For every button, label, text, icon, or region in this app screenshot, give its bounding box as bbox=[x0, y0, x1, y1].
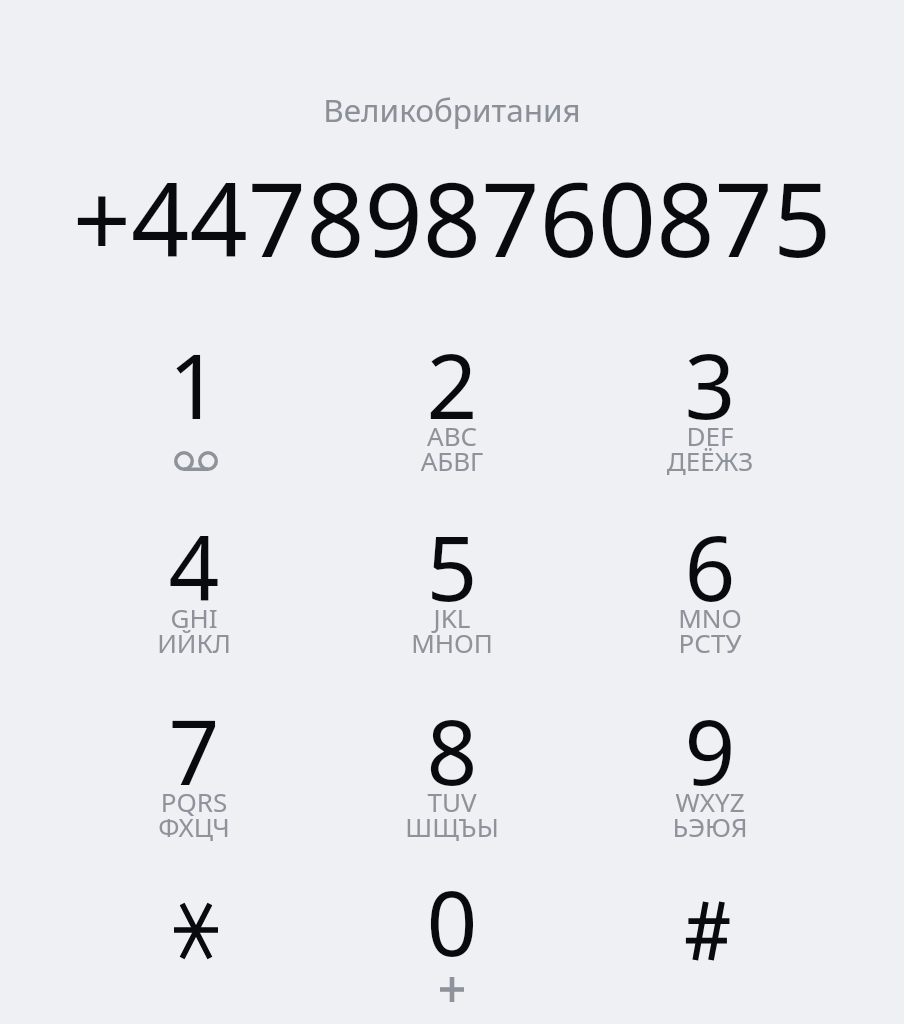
staticText: WXYZ bbox=[581, 784, 839, 819]
staticText: ИЙКЛ bbox=[65, 625, 323, 660]
button[interactable]: 8 TUV ШЩЪЫ bbox=[323, 690, 581, 860]
staticText: РСТУ bbox=[581, 625, 839, 660]
staticText: 6 bbox=[581, 506, 839, 627]
staticText: ABC bbox=[323, 418, 581, 453]
staticText: 1 bbox=[65, 324, 323, 445]
staticText: 7 bbox=[65, 690, 323, 811]
staticText: 5 bbox=[323, 506, 581, 627]
staticText: JKL bbox=[323, 600, 581, 635]
staticText: Великобритания bbox=[0, 88, 904, 131]
staticText: 0 bbox=[323, 861, 581, 982]
staticText: ЬЭЮЯ bbox=[581, 809, 839, 844]
staticText: ШЩЪЫ bbox=[323, 809, 581, 844]
button[interactable]: Star bbox=[65, 861, 323, 1023]
button[interactable]: 6 MNO РСТУ bbox=[581, 506, 839, 676]
staticText: TUV bbox=[323, 784, 581, 819]
staticText: МНОП bbox=[323, 625, 581, 660]
staticText: MNO bbox=[581, 600, 839, 635]
button[interactable]: 0 plus bbox=[323, 861, 581, 1023]
staticText: 4 bbox=[65, 506, 323, 627]
staticText: +447898760875 bbox=[0, 148, 904, 287]
button[interactable]: 2 ABC АБВГ bbox=[323, 324, 581, 494]
button[interactable]: Pound bbox=[581, 861, 839, 1023]
staticText: ДЕЁЖЗ bbox=[581, 443, 839, 478]
button[interactable]: 4 GHI ИЙКЛ bbox=[65, 506, 323, 676]
staticText: 8 bbox=[323, 690, 581, 811]
button[interactable]: 9 WXYZ ЬЭЮЯ bbox=[581, 690, 839, 860]
staticText: PQRS bbox=[65, 784, 323, 819]
staticText: 9 bbox=[581, 690, 839, 811]
staticText: 2 bbox=[323, 324, 581, 445]
button[interactable]: 5 JKL МНОП bbox=[323, 506, 581, 676]
staticText: 3 bbox=[581, 324, 839, 445]
staticText: АБВГ bbox=[323, 443, 581, 478]
button[interactable]: 1 voicemail bbox=[65, 324, 323, 494]
staticText: GHI bbox=[65, 600, 323, 635]
staticText: DEF bbox=[581, 418, 839, 453]
button[interactable]: 7 PQRS ФХЦЧ bbox=[65, 690, 323, 860]
button[interactable]: 3 DEF ДЕЁЖЗ bbox=[581, 324, 839, 494]
staticText: ФХЦЧ bbox=[65, 809, 323, 844]
